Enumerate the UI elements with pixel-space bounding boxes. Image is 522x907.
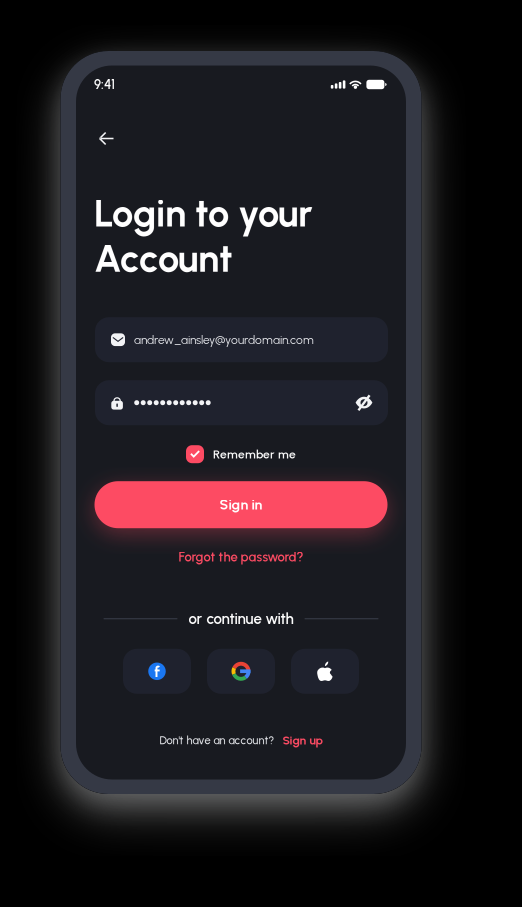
staticText: Forgot the password? [178, 549, 303, 565]
button[interactable]: Sign up [282, 733, 322, 747]
button[interactable]: Back [98, 121, 136, 155]
staticText: Login to your [94, 190, 313, 236]
staticText: andrew_ainsley@yourdomain.com [134, 332, 314, 347]
button[interactable]: Show password [355, 394, 373, 411]
staticText: Sign up [282, 733, 322, 747]
button[interactable]: Forgot the password? [178, 549, 303, 565]
staticText: f [154, 662, 160, 681]
button[interactable]: Sign in [94, 481, 387, 528]
button[interactable]: Continue with Google [207, 649, 275, 694]
staticText: Don't have an account? [159, 734, 274, 747]
staticText: Sign in [219, 496, 262, 513]
button[interactable]: Remember me [186, 445, 296, 463]
button[interactable]: Continue with Apple [291, 649, 359, 694]
staticText: Account [94, 236, 233, 281]
staticText: Remember me [213, 447, 296, 461]
staticText: or continue with [188, 610, 293, 628]
staticText: 9:41 [94, 77, 115, 92]
button[interactable]: Continue with Facebook [123, 649, 191, 694]
